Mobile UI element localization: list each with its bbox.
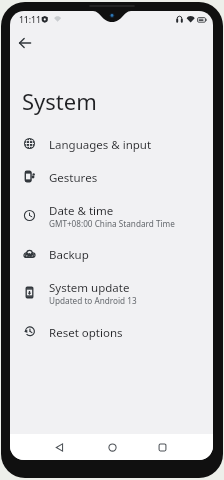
button[interactable]: System update — [10, 271, 213, 316]
staticText: System — [22, 86, 97, 116]
button[interactable]: Navigate up — [15, 33, 35, 53]
button[interactable]: Back — [42, 434, 76, 460]
staticText: System update — [49, 280, 130, 296]
button[interactable]: Reset options — [10, 316, 213, 349]
staticText: 11:11 — [19, 14, 41, 26]
staticText: Gestures — [49, 170, 98, 186]
staticText: Date & time — [49, 203, 114, 219]
staticText: Updated to Android 13 — [49, 295, 137, 306]
staticText: Reset options — [49, 325, 123, 341]
button[interactable]: Backup — [10, 238, 213, 271]
staticText: Backup — [49, 247, 89, 263]
button[interactable]: Gestures — [10, 161, 213, 194]
button[interactable]: Recent apps — [145, 434, 179, 460]
button[interactable]: Languages & input — [10, 128, 213, 161]
staticText: GMT+08:00 China Standard Time — [49, 218, 175, 229]
button[interactable]: Date & time — [10, 194, 213, 239]
staticText: Languages & input — [49, 137, 152, 153]
button[interactable]: Home — [95, 434, 129, 460]
